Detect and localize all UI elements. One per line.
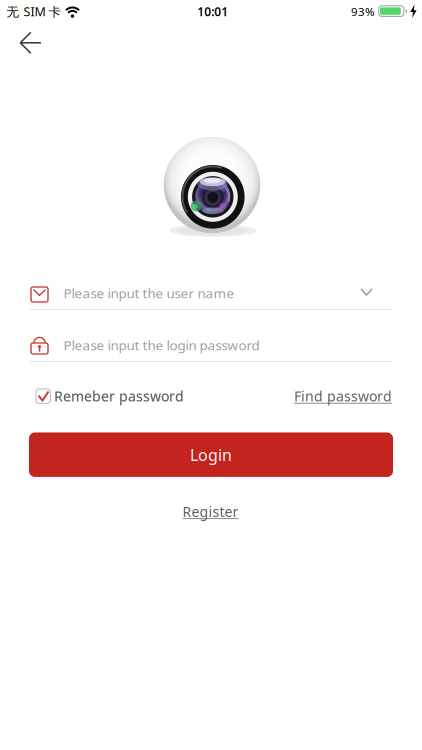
button[interactable]: Register — [182, 502, 238, 521]
button[interactable]: Find password — [272, 386, 392, 406]
staticText: Find password — [294, 386, 392, 406]
button[interactable]: Login — [29, 432, 393, 477]
staticText: Remeber password — [54, 386, 184, 406]
staticText: Please input the user name — [64, 284, 235, 302]
staticText: 93% — [351, 4, 375, 19]
staticText: Register — [182, 502, 238, 521]
button[interactable]: Please input the login password — [30, 328, 392, 362]
staticText: Please input the login password — [64, 336, 260, 354]
button[interactable]: Please input the user name — [30, 276, 392, 310]
staticText: 10:01 — [197, 3, 228, 20]
staticText: 无 SIM 卡 — [6, 3, 61, 20]
button[interactable]: Remeber password — [34, 386, 190, 406]
button[interactable]: Back — [9, 23, 49, 63]
staticText: Login — [190, 444, 232, 466]
